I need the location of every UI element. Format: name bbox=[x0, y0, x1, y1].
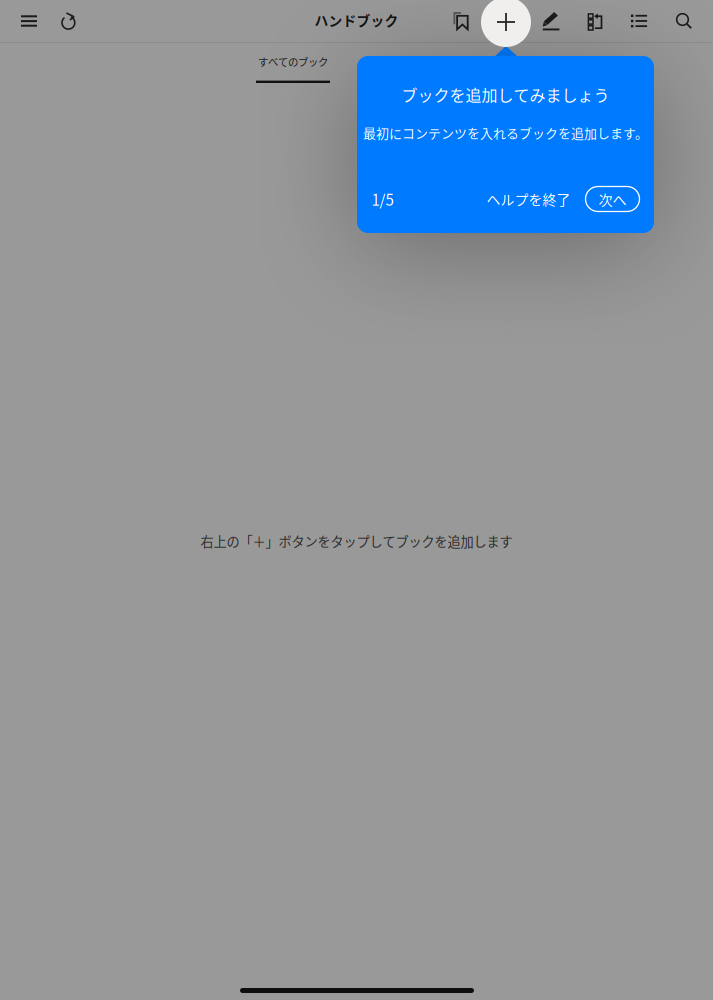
button[interactable]: 目次 bbox=[619, 1, 659, 41]
button[interactable]: ヘルプを終了 bbox=[486, 186, 570, 212]
button[interactable]: 編集 bbox=[531, 1, 571, 41]
button[interactable]: ブックを追加 bbox=[481, 0, 531, 47]
button[interactable]: メニュー bbox=[9, 1, 49, 41]
button[interactable]: 並べ替え bbox=[575, 2, 615, 42]
button[interactable]: 次へ bbox=[585, 186, 639, 211]
staticText: 最初にコンテンツを入れるブックを追加します。 bbox=[363, 123, 648, 142]
button[interactable]: すべてのブック bbox=[256, 53, 330, 83]
staticText: すべてのブック bbox=[258, 54, 328, 69]
staticText: 右上の「＋」ボタンをタップしてブックを追加します bbox=[200, 531, 512, 550]
staticText: 次へ bbox=[598, 189, 626, 209]
staticText: ハンドブック bbox=[314, 10, 398, 30]
button[interactable]: 再読み込み bbox=[49, 1, 89, 41]
button[interactable]: 検索 bbox=[664, 1, 704, 41]
button[interactable]: ブックマーク bbox=[441, 1, 481, 41]
staticText: ブックを追加してみましょう bbox=[401, 83, 609, 106]
staticText: ヘルプを終了 bbox=[486, 189, 570, 209]
staticText: 1/5 bbox=[371, 188, 393, 210]
